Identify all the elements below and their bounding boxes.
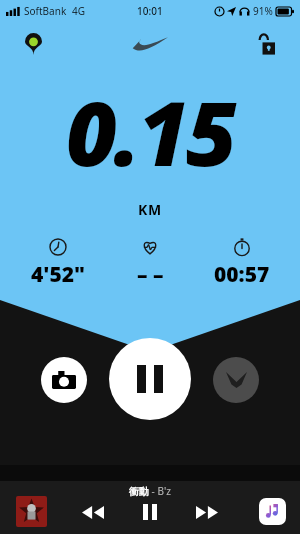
button[interactable]: Album artwork (16, 496, 47, 527)
button[interactable]: Pause run (109, 338, 191, 420)
staticText: – – (137, 260, 164, 289)
staticText: 4G (72, 4, 85, 18)
button[interactable]: Open Apple Music (259, 498, 286, 525)
staticText: 0.15 (66, 72, 235, 192)
button[interactable]: Camera (41, 357, 87, 403)
staticText: 00:57 (214, 260, 270, 289)
staticText: 10:01 (137, 4, 163, 18)
button[interactable]: GPS signal (18, 29, 48, 59)
staticText: 91% (253, 4, 273, 18)
button[interactable]: Unlock (252, 29, 282, 59)
staticText: - B'z (149, 484, 171, 498)
button[interactable]: Previous track (74, 493, 112, 531)
button[interactable]: Next track (188, 493, 226, 531)
staticText: KM (138, 200, 163, 219)
button[interactable]: Pause music (131, 493, 169, 531)
button[interactable]: Audio feedback (213, 357, 259, 403)
staticText: SoftBank (24, 4, 67, 18)
staticText: 4'52" (31, 260, 86, 289)
staticText: 衝動 (129, 485, 149, 498)
